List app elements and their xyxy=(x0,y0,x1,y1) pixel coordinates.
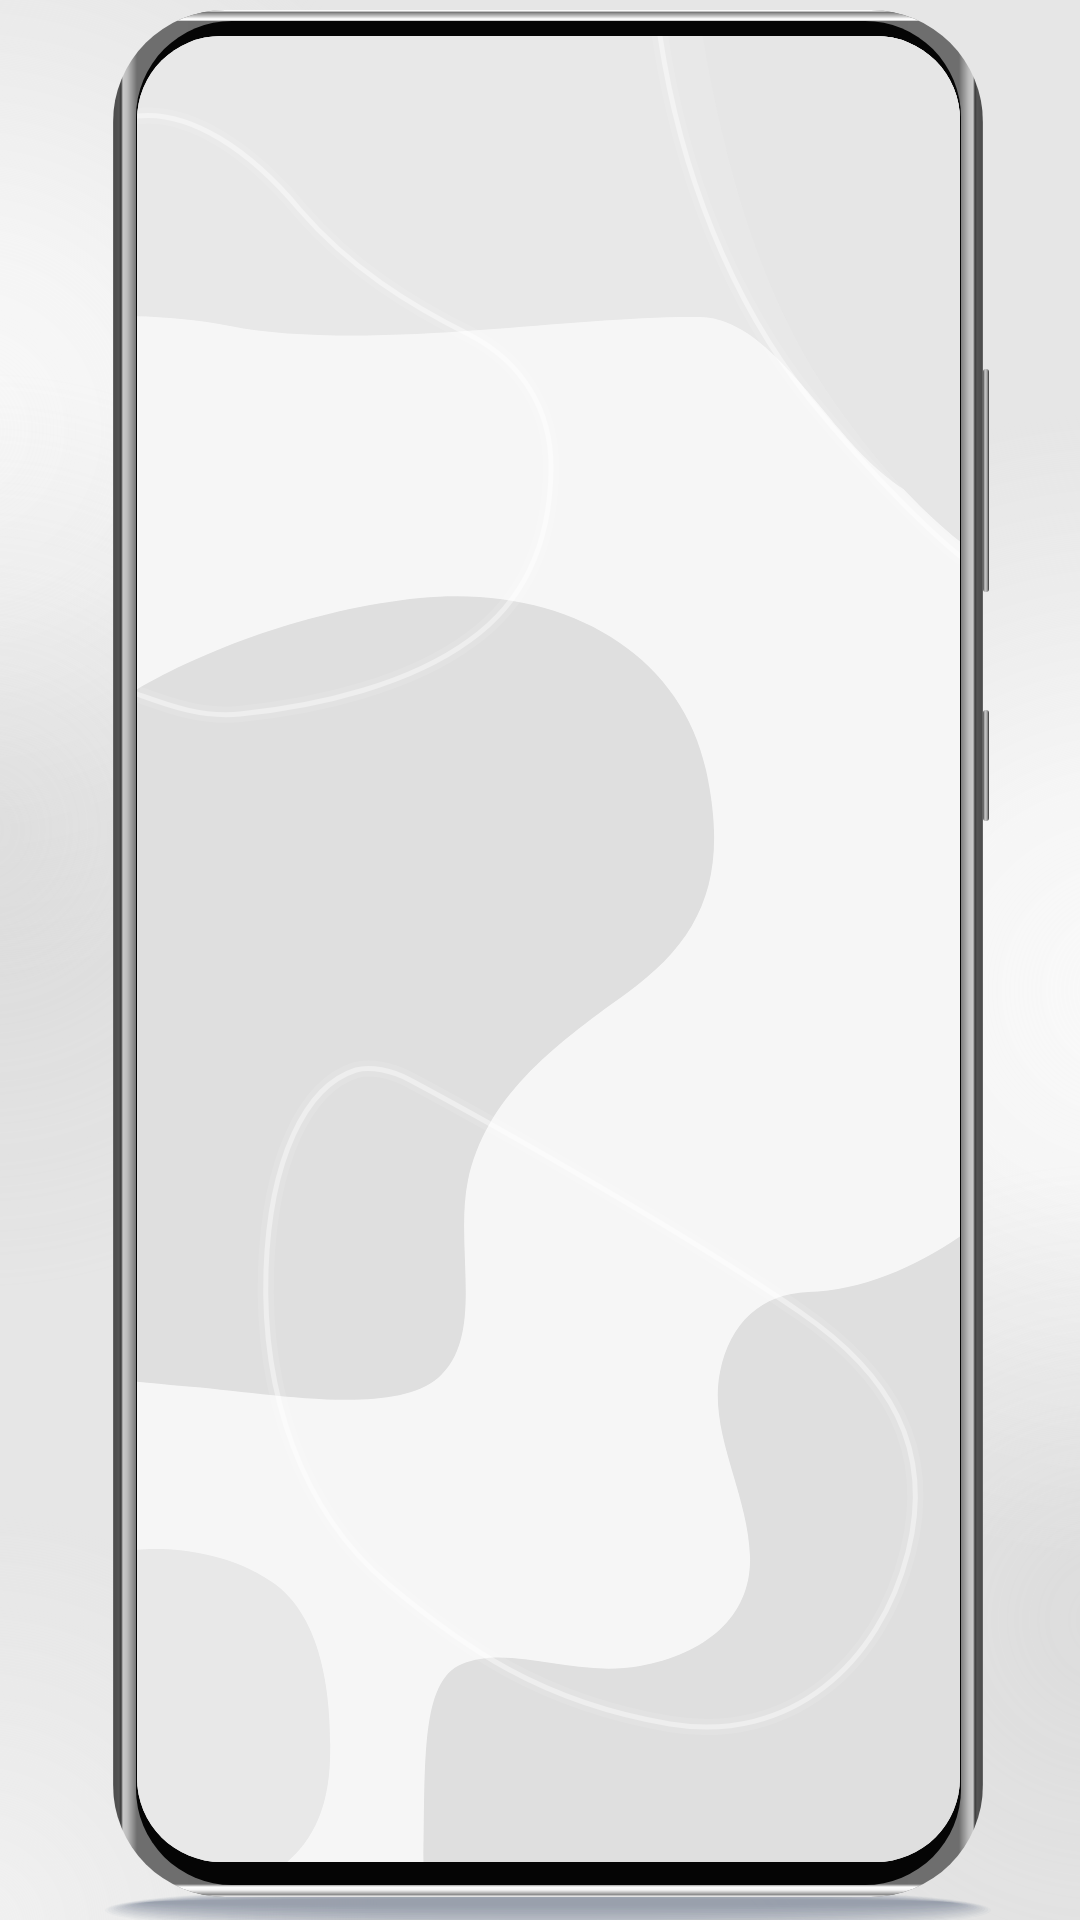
button[interactable]: Phone mockup wallpaper xyxy=(0,0,1080,1920)
